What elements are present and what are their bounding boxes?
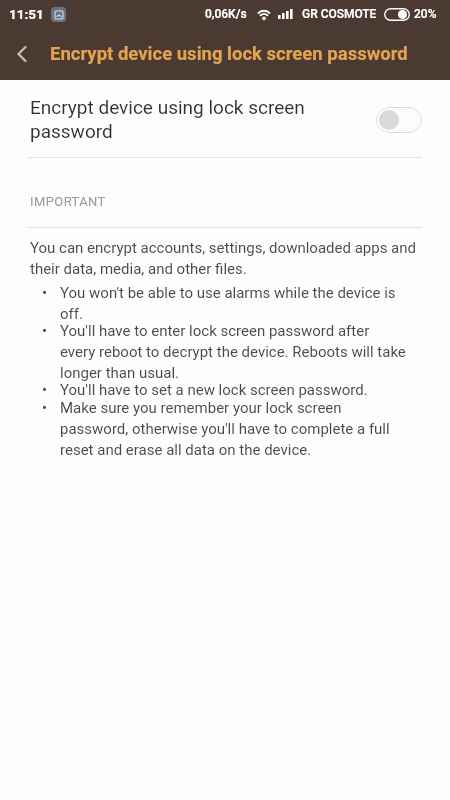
button[interactable]: Encrypt device using lock screen passwor…: [0, 80, 450, 157]
staticText: 0,06K/s: [205, 7, 247, 21]
staticText: Encrypt device using lock screen passwor…: [50, 43, 408, 65]
staticText: •: [42, 322, 60, 340]
staticText: 11:51: [9, 6, 44, 22]
staticText: You won't be able to use alarms while th…: [60, 284, 407, 322]
staticText: •: [42, 284, 60, 302]
staticText: GR COSMOTE: [302, 7, 377, 21]
staticText: Make sure you remember your lock screen …: [60, 399, 407, 458]
staticText: •: [42, 381, 60, 399]
staticText: IMPORTANT: [30, 194, 106, 209]
staticText: •: [42, 399, 60, 417]
staticText: 20%: [414, 7, 437, 21]
staticText: Encrypt device using lock screen passwor…: [30, 96, 376, 143]
button[interactable]: [0, 28, 44, 80]
staticText: You can encrypt accounts, settings, down…: [30, 239, 422, 277]
button[interactable]: [376, 107, 422, 133]
staticText: You'll have to set a new lock screen pas…: [60, 381, 407, 399]
staticText: You'll have to enter lock screen passwor…: [60, 322, 407, 381]
